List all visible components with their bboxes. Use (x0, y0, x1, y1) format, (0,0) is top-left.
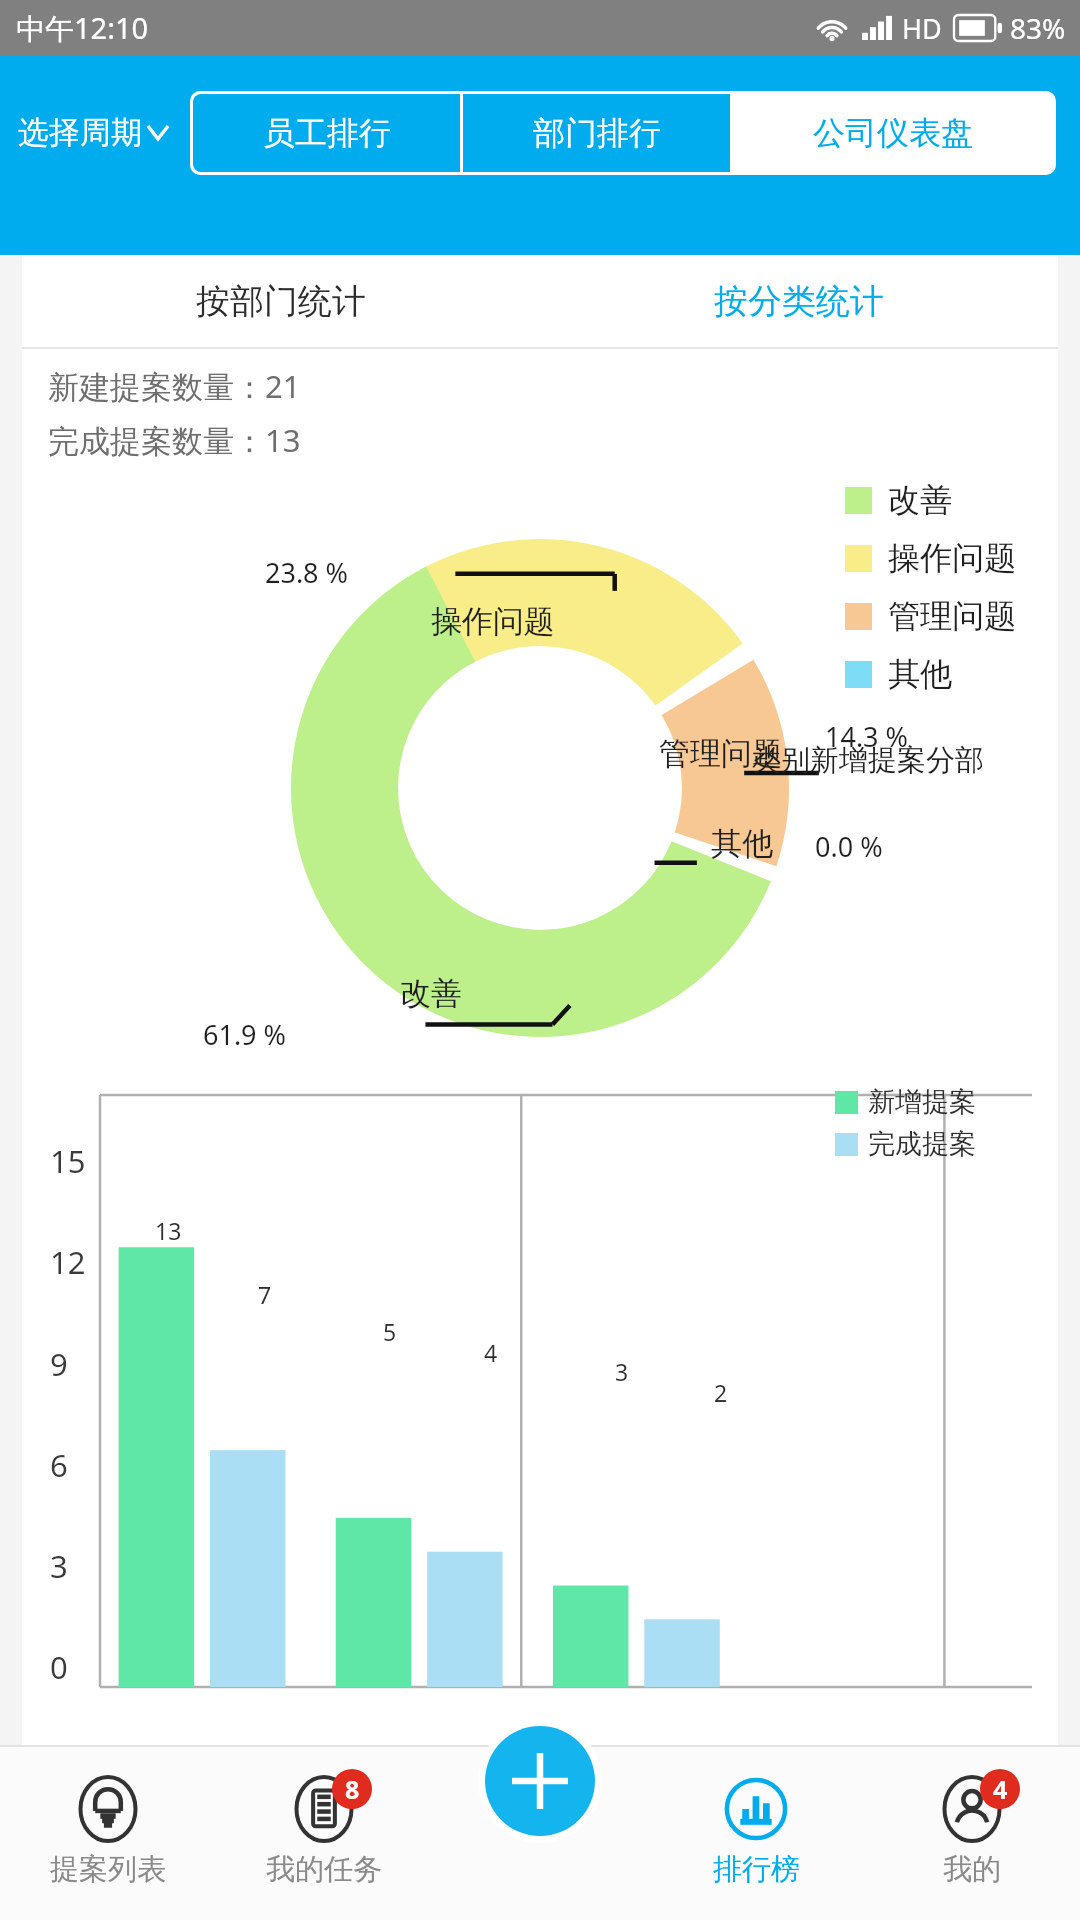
staticText: 6 (50, 1444, 68, 1486)
button[interactable]: 8 (216, 1745, 432, 1920)
staticText: 61.9 % (203, 1016, 287, 1053)
staticText: 9 (50, 1343, 68, 1385)
staticText: 中午12:10 (16, 8, 149, 48)
staticText: 14.3 % (825, 718, 909, 755)
staticText: 2 (714, 1377, 728, 1408)
staticText: 操作问题 (431, 602, 555, 641)
button[interactable]: 公司仪表盘 (733, 94, 1053, 172)
staticText: 3 (50, 1545, 68, 1587)
button[interactable]: 按分类统计 (540, 255, 1058, 347)
staticText: 完成提案 (868, 1127, 976, 1161)
staticText: 13 (155, 1215, 182, 1246)
staticText: 排行榜 (713, 1851, 800, 1888)
staticText: 其他 (888, 654, 952, 694)
staticText: 提案列表 (50, 1851, 166, 1888)
staticText: 类别新增提案分部 (752, 742, 984, 779)
staticText: 其他 (711, 824, 773, 863)
button[interactable]: 部门排行 (463, 94, 730, 172)
staticText: 改善 (888, 480, 952, 520)
staticText: 新增提案 (868, 1085, 976, 1119)
staticText: 0 (50, 1646, 68, 1688)
staticText: 7 (258, 1279, 272, 1310)
button[interactable]: 按部门统计 (22, 255, 540, 347)
button[interactable]: 排行榜 (648, 1745, 864, 1920)
staticText: 3 (615, 1356, 629, 1387)
staticText: 83% (1010, 9, 1066, 47)
staticText: 8 (345, 1772, 360, 1806)
staticText: 我的任务 (266, 1851, 382, 1888)
staticText: 公司仪表盘 (813, 113, 973, 153)
staticText: 0.0 % (815, 828, 883, 865)
staticText: 改善 (400, 974, 462, 1013)
staticText: 12 (50, 1241, 86, 1283)
staticText: 完成提案数量：13 (48, 419, 301, 461)
button[interactable]: 员工排行 (193, 94, 460, 172)
staticText: 4 (484, 1337, 498, 1368)
staticText: 选择周期 (18, 113, 142, 152)
staticText: 操作问题 (888, 538, 1016, 578)
staticText: 按部门统计 (196, 280, 366, 323)
button[interactable]: 选择周期 (10, 101, 176, 164)
staticText: 新建提案数量：21 (48, 365, 301, 407)
button[interactable]: 4 (864, 1745, 1080, 1920)
staticText: 5 (383, 1316, 397, 1347)
staticText: HD (902, 10, 942, 47)
staticText: 管理问题 (888, 596, 1016, 636)
staticText: 我的 (943, 1851, 1001, 1888)
button[interactable]: 新建提案 (485, 1726, 595, 1836)
staticText: 部门排行 (533, 113, 661, 153)
staticText: 按分类统计 (714, 280, 884, 323)
staticText: 管理问题 (659, 734, 783, 773)
staticText: 15 (50, 1140, 86, 1182)
staticText: 4 (993, 1772, 1008, 1806)
button[interactable]: 提案列表 (0, 1745, 216, 1920)
staticText: 23.8 % (265, 554, 349, 591)
staticText: 员工排行 (263, 113, 391, 153)
